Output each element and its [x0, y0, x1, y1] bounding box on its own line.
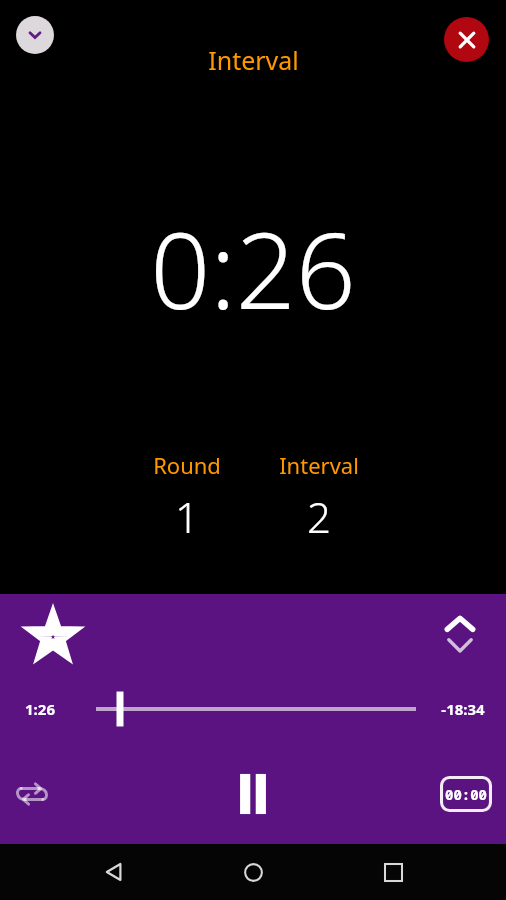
staticText: Interval	[279, 450, 359, 480]
button[interactable]: Recents	[367, 846, 419, 898]
staticText: Round	[153, 450, 221, 480]
staticText: 1:26	[25, 699, 55, 719]
staticText: 2	[307, 488, 331, 545]
button[interactable]: Back	[88, 846, 140, 898]
button[interactable]: Favourite	[22, 606, 84, 668]
button[interactable]: Close	[444, 17, 489, 62]
button[interactable]: Seek bar	[96, 690, 416, 728]
button[interactable]: Interval	[254, 450, 384, 545]
button[interactable]: Collapse	[16, 16, 54, 54]
button[interactable]: Pause	[217, 759, 289, 829]
staticText: 0:26	[150, 197, 356, 340]
button[interactable]: Timer	[440, 776, 492, 812]
staticText: Interval	[208, 43, 299, 77]
staticText: -18:34	[441, 699, 485, 719]
button[interactable]: Round	[122, 450, 252, 545]
staticText: 00:00	[445, 785, 487, 804]
button[interactable]: Home	[227, 846, 279, 898]
button[interactable]: Repeat	[4, 766, 60, 822]
staticText: 1	[175, 488, 199, 545]
button[interactable]: Expand	[429, 604, 491, 666]
